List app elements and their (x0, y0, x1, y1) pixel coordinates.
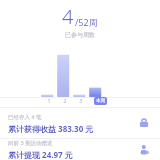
staticText: 已参与周数 (0, 31, 160, 39)
button[interactable]: 目前 3 期活动赠送 (0, 139, 160, 160)
staticText: 1 (41, 98, 57, 105)
staticText: 目前 3 期活动赠送 (8, 139, 53, 147)
staticText: 3 (73, 98, 89, 105)
button[interactable]: 已经存入 4 笔 (0, 108, 160, 138)
staticText: /52周 (75, 16, 98, 28)
staticText: 累计获得收益 383.30 元 (8, 123, 94, 134)
staticText: 4 (62, 3, 74, 30)
staticText: 2 (57, 98, 73, 105)
other: 提现详情 (136, 142, 152, 158)
staticText: 累计提现 24.97 元 (8, 149, 73, 160)
staticText: 本周 (96, 98, 105, 104)
staticText: 已经存入 4 笔 (8, 113, 42, 121)
other: 收益详情 (136, 115, 152, 131)
